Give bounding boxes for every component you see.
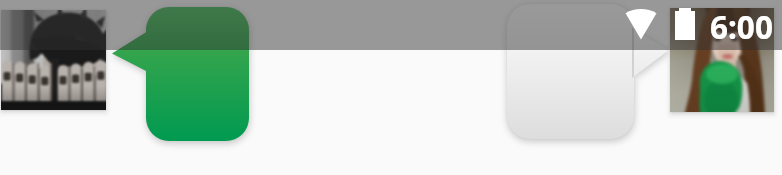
- button[interactable]: Contact avatar: [1, 10, 106, 110]
- button[interactable]: [507, 4, 669, 139]
- staticText: 6:00: [710, 5, 773, 48]
- button[interactable]: My avatar: [670, 8, 774, 112]
- button[interactable]: [112, 7, 249, 141]
